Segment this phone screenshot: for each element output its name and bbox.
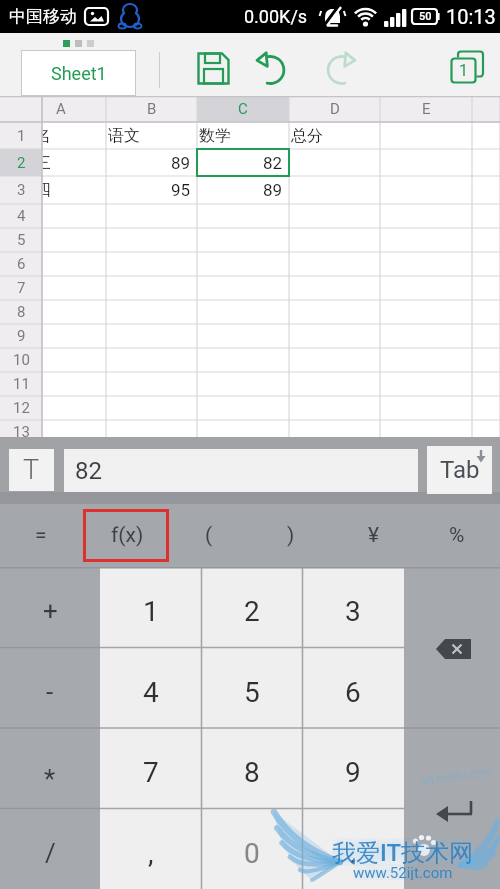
staticText: 7 bbox=[143, 756, 159, 789]
button[interactable] bbox=[404, 567, 500, 728]
button[interactable]: , bbox=[100, 813, 201, 889]
button[interactable]: f(x) bbox=[89, 504, 165, 567]
staticText: 1 bbox=[17, 127, 26, 145]
staticText: 11 bbox=[13, 375, 30, 393]
staticText: ( bbox=[205, 523, 213, 548]
staticText: 8 bbox=[17, 303, 26, 321]
staticText: an.baidu.com bbox=[419, 764, 494, 788]
staticText: 中国移动 bbox=[9, 6, 77, 27]
button[interactable]: ¥ bbox=[336, 504, 412, 567]
staticText: 3 bbox=[17, 181, 26, 199]
button[interactable]: 5 bbox=[201, 652, 302, 732]
staticText: 95 bbox=[171, 180, 191, 200]
staticText: 12 bbox=[13, 399, 30, 417]
staticText: - bbox=[46, 677, 54, 707]
staticText: 总分 bbox=[291, 126, 323, 146]
button[interactable]: * bbox=[0, 739, 100, 819]
staticText: ) bbox=[287, 523, 295, 548]
button[interactable] bbox=[254, 51, 290, 87]
button[interactable]: 3 bbox=[302, 571, 403, 651]
staticText: , bbox=[148, 837, 154, 870]
button[interactable]: 0 bbox=[201, 813, 302, 889]
button[interactable]: 1 bbox=[100, 571, 201, 651]
staticText: % bbox=[449, 523, 465, 548]
staticText: 82 bbox=[263, 153, 283, 173]
staticText: 9 bbox=[17, 327, 26, 345]
button[interactable] bbox=[404, 728, 500, 889]
staticText: 50 bbox=[419, 10, 432, 23]
staticText: 0 bbox=[244, 837, 260, 870]
staticText: A bbox=[56, 100, 66, 118]
staticText: 0.00K/s bbox=[244, 6, 308, 27]
staticText: 我爱IT技术网 bbox=[332, 838, 474, 866]
staticText: 13 bbox=[13, 423, 30, 441]
staticText: 3 bbox=[345, 595, 361, 628]
staticText: B bbox=[147, 100, 157, 118]
staticText: D bbox=[330, 100, 340, 118]
staticText: 82 bbox=[75, 457, 102, 485]
button[interactable]: ) bbox=[253, 504, 329, 567]
staticText: 名 bbox=[35, 126, 51, 146]
button[interactable]: = bbox=[3, 504, 79, 567]
staticText: 9 bbox=[345, 756, 361, 789]
button[interactable]: % bbox=[419, 504, 495, 567]
button[interactable]: + bbox=[0, 571, 100, 651]
staticText: 4 bbox=[143, 676, 159, 709]
button[interactable]: 82 bbox=[64, 449, 418, 492]
staticText: 10 bbox=[13, 351, 30, 369]
staticText: 三 bbox=[35, 153, 51, 173]
staticText: * bbox=[44, 764, 56, 794]
button[interactable]: 1 bbox=[449, 50, 486, 87]
button[interactable]: / bbox=[0, 813, 100, 889]
button[interactable] bbox=[197, 52, 230, 85]
button[interactable]: 9 bbox=[302, 732, 403, 812]
staticText: 6 bbox=[345, 676, 361, 709]
staticText: 2 bbox=[244, 595, 260, 628]
staticText: . bbox=[349, 837, 357, 870]
staticText: f(x) bbox=[111, 523, 144, 548]
button[interactable]: Sheet1 bbox=[21, 50, 136, 96]
staticText: 7 bbox=[17, 279, 26, 297]
staticText: 数学 bbox=[199, 126, 231, 146]
button[interactable]: 7 bbox=[100, 732, 201, 812]
button[interactable]: 6 bbox=[302, 652, 403, 732]
staticText: Tab bbox=[440, 456, 480, 484]
staticText: 89 bbox=[263, 180, 283, 200]
staticText: 89 bbox=[171, 153, 191, 173]
staticText: 5 bbox=[17, 231, 26, 249]
button[interactable]: ( bbox=[171, 504, 247, 567]
button[interactable]: 2 bbox=[201, 571, 302, 651]
button[interactable]: Tab bbox=[427, 446, 492, 494]
staticText: 8 bbox=[244, 756, 260, 789]
staticText: 6 bbox=[17, 255, 26, 273]
button[interactable]: - bbox=[0, 652, 100, 732]
staticText: = bbox=[35, 523, 47, 548]
button[interactable] bbox=[322, 51, 358, 87]
staticText: 5 bbox=[244, 676, 260, 709]
staticText: www.52ijt.com bbox=[353, 864, 453, 880]
staticText: 10:13 bbox=[446, 5, 496, 28]
staticText: 四 bbox=[35, 180, 51, 200]
button[interactable]: . bbox=[302, 813, 403, 889]
button[interactable]: 8 bbox=[201, 732, 302, 812]
button[interactable]: 4 bbox=[100, 652, 201, 732]
staticText: 1 bbox=[459, 61, 468, 80]
staticText: E bbox=[422, 100, 431, 118]
staticText: 2 bbox=[17, 154, 26, 172]
staticText: 1 bbox=[143, 595, 159, 628]
button[interactable]: T bbox=[9, 449, 54, 491]
staticText: / bbox=[45, 838, 56, 868]
staticText: Sheet1 bbox=[51, 63, 107, 84]
staticText: T bbox=[23, 454, 40, 486]
staticText: C bbox=[238, 100, 248, 118]
staticText: 语文 bbox=[108, 126, 140, 146]
staticText: 4 bbox=[17, 207, 26, 225]
staticText: ¥ bbox=[368, 523, 380, 548]
staticText: + bbox=[43, 596, 58, 626]
